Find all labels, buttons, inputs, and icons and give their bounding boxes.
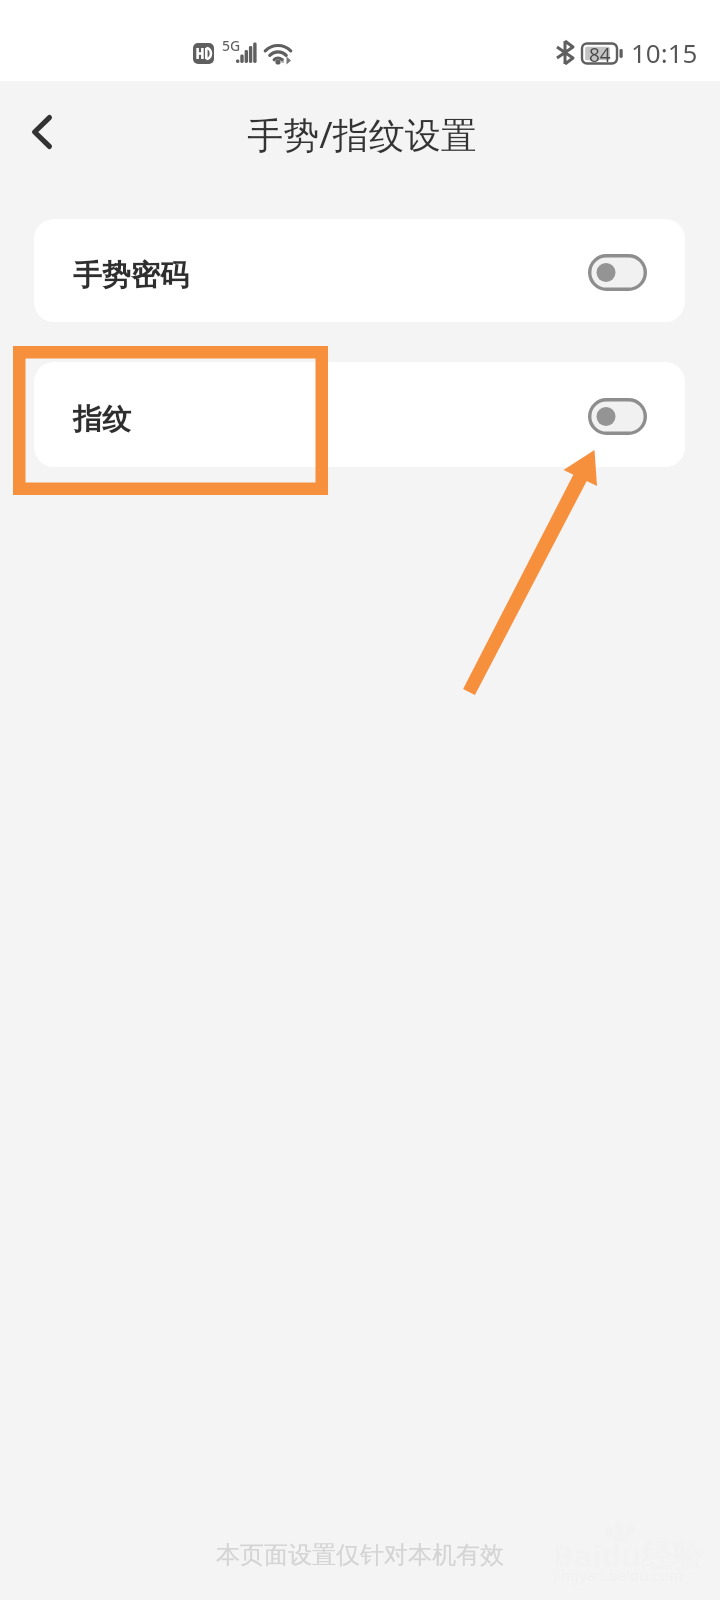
button[interactable]: 指纹 — [34, 362, 685, 467]
button[interactable]: Back — [11, 101, 73, 163]
staticText: 5G — [222, 36, 241, 55]
staticText: 10:15 — [631, 35, 698, 70]
staticText: 本页面设置仅针对本机有效 — [216, 1540, 504, 1570]
button[interactable]: Toggle 手势密码 — [588, 254, 647, 291]
staticText: 手势/指纹设置 — [247, 110, 477, 159]
staticText: 手势密码 — [73, 257, 189, 294]
staticText: 84 — [589, 42, 611, 68]
button[interactable]: Toggle 指纹 — [588, 398, 647, 435]
button[interactable]: 手势密码 — [34, 219, 685, 322]
staticText: 指纹 — [73, 401, 131, 438]
